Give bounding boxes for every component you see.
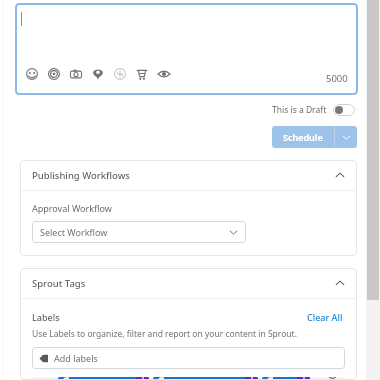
button[interactable]: Shop [131,63,153,85]
button[interactable]: Sprout Tags [20,268,357,298]
button[interactable]: Select Workflow [32,221,246,243]
staticText: user generated content [167,377,241,380]
button[interactable]: Preview [153,63,175,85]
button[interactable]: video [262,377,310,380]
button[interactable]: More schedule options [335,126,357,148]
button[interactable]: Photo [65,63,87,85]
button[interactable]: Dismiss suggestions [325,377,339,380]
staticText: Select Workflow [40,226,108,238]
staticText: Sprout Tags [32,277,86,290]
staticText: Publishing Workflows [32,169,130,182]
button[interactable]: Clear All [305,309,345,325]
button[interactable]: user generated content [153,377,258,380]
button[interactable]: Schedule [272,126,334,148]
staticText: Labels [32,311,60,323]
button[interactable]: Publishing Workflows [20,160,357,190]
staticText: Use Labels to organize, filter and repor… [32,328,297,340]
staticText: video [276,377,293,380]
staticText: This is a Draft [272,104,327,116]
staticText: thought leadership [72,377,132,380]
staticText: Clear All [307,311,343,323]
staticText: Schedule [283,131,323,143]
button[interactable]: Price [109,63,131,85]
button[interactable]: Location [87,63,109,85]
button[interactable]: This is a Draft [270,102,357,118]
button[interactable]: thought leadership [58,377,149,380]
staticText: Add labels [54,352,98,364]
staticText: Approval Workflow [32,202,112,214]
button[interactable]: Add labels [32,347,345,369]
staticText: 5000 [326,72,348,85]
staticText: Try: [38,377,53,380]
button[interactable]: Emoji [15,3,358,95]
button[interactable]: Media [43,63,65,85]
button[interactable]: Emoji [21,63,43,85]
